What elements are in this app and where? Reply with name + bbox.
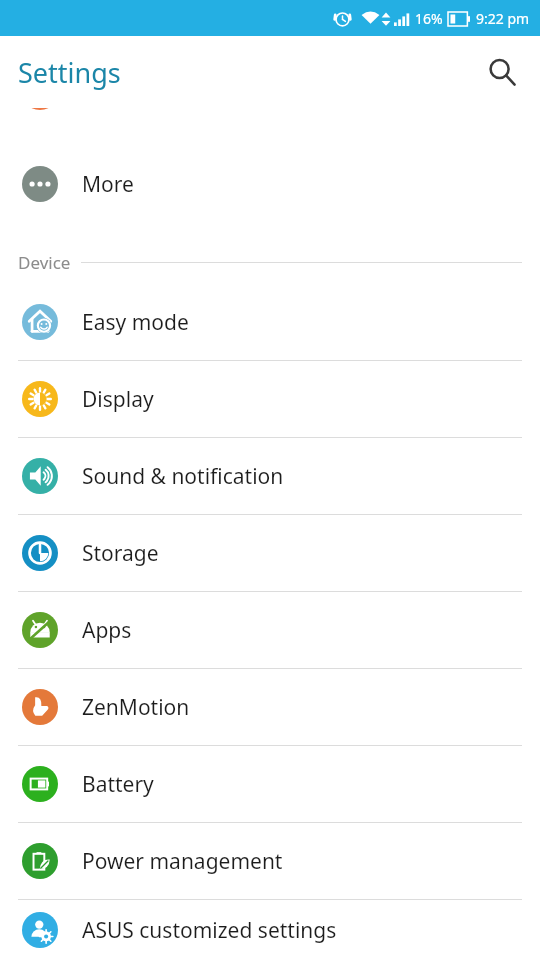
staticText: Easy mode — [82, 308, 189, 337]
staticText: Data usage — [82, 75, 194, 104]
button[interactable]: Apps — [0, 592, 540, 669]
staticText: Sound & notification — [82, 462, 284, 491]
button[interactable]: Data usage — [0, 70, 540, 108]
staticText: Device — [18, 251, 71, 274]
staticText: Settings — [18, 54, 121, 91]
button[interactable]: Data usage — [0, 108, 540, 146]
button[interactable]: More — [0, 146, 540, 222]
button[interactable]: Search — [478, 48, 526, 96]
staticText: Apps — [82, 616, 132, 645]
button[interactable]: Power management — [0, 823, 540, 900]
button[interactable]: ASUS customized settings — [0, 900, 540, 960]
button[interactable]: Display — [0, 361, 540, 438]
staticText: Power management — [82, 847, 283, 876]
button[interactable]: Battery — [0, 746, 540, 823]
staticText: Storage — [82, 539, 159, 568]
button[interactable]: Easy mode — [0, 284, 540, 361]
button[interactable]: Sound & notification — [0, 438, 540, 515]
staticText: Display — [82, 385, 154, 414]
staticText: 16% — [415, 9, 443, 28]
staticText: 9:22 pm — [476, 9, 530, 28]
button[interactable]: ZenMotion — [0, 669, 540, 746]
staticText: ASUS customized settings — [82, 916, 337, 945]
staticText: More — [82, 170, 134, 199]
staticText: ZenMotion — [82, 693, 190, 722]
staticText: Battery — [82, 770, 154, 799]
button[interactable]: Storage — [0, 515, 540, 592]
